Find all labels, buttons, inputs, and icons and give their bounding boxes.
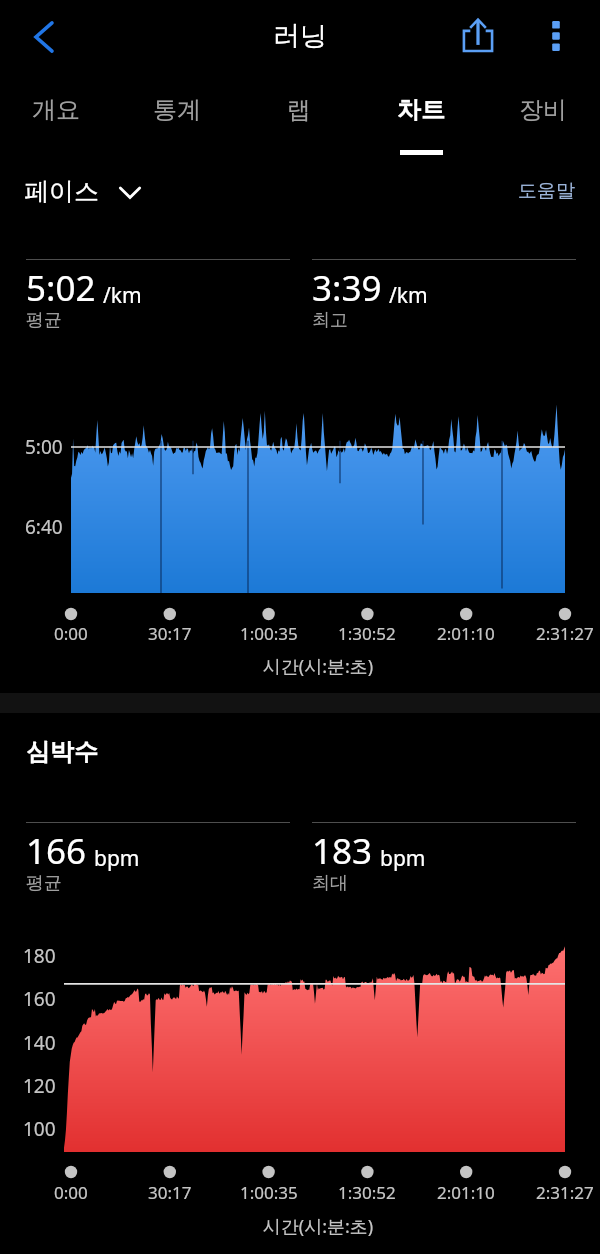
button[interactable]: 차트 — [360, 75, 482, 155]
staticText: 2:31:27 — [536, 1181, 594, 1204]
staticText: 0:00 — [54, 1181, 88, 1204]
staticText: 180 — [23, 943, 56, 969]
staticText: 1:30:52 — [338, 622, 396, 645]
button[interactable]: Share — [452, 9, 504, 61]
staticText: 심박수 — [26, 737, 98, 767]
staticText: 장비 — [519, 95, 567, 125]
staticText: 최대 — [312, 872, 348, 895]
staticText: 시간(시:분:초) — [71, 654, 565, 679]
button[interactable]: 통계 — [116, 75, 238, 155]
staticText: bpm — [94, 844, 140, 873]
staticText: 120 — [23, 1073, 56, 1099]
button[interactable]: Back — [18, 11, 70, 63]
staticText: 페이스 — [24, 176, 99, 207]
button[interactable]: 개요 — [0, 75, 117, 155]
staticText: 평균 — [26, 309, 62, 332]
staticText: 차트 — [397, 95, 445, 125]
staticText: 랩 — [287, 95, 311, 125]
staticText: 개요 — [32, 95, 80, 125]
staticText: 166 — [26, 827, 87, 875]
staticText: 1:00:35 — [240, 1181, 298, 1204]
button[interactable]: Heart rate chart — [0, 935, 600, 1152]
staticText: 2:01:10 — [437, 1181, 495, 1204]
staticText: 통계 — [153, 95, 201, 125]
button[interactable]: 랩 — [238, 75, 360, 155]
staticText: 183 — [312, 827, 373, 875]
staticText: 5:00 — [25, 434, 63, 460]
staticText: 최고 — [312, 309, 348, 332]
staticText: 6:40 — [25, 514, 63, 540]
button[interactable]: More options — [530, 10, 582, 62]
staticText: 2:31:27 — [536, 622, 594, 645]
button[interactable]: 페이스 — [24, 176, 141, 207]
staticText: 3:39 — [312, 264, 382, 312]
staticText: 시간(시:분:초) — [71, 1214, 565, 1239]
staticText: bpm — [380, 844, 426, 873]
staticText: 5:02 — [26, 264, 96, 312]
staticText: 1:30:52 — [338, 1181, 396, 1204]
staticText: 30:17 — [148, 1181, 192, 1204]
staticText: 140 — [23, 1030, 56, 1056]
staticText: /km — [389, 281, 428, 310]
staticText: 러닝 — [273, 19, 327, 53]
staticText: 100 — [23, 1116, 56, 1142]
staticText: 평균 — [26, 872, 62, 895]
staticText: 0:00 — [54, 622, 88, 645]
staticText: 160 — [23, 986, 56, 1012]
staticText: 도움말 — [518, 179, 575, 203]
staticText: 1:00:35 — [240, 622, 298, 645]
staticText: /km — [103, 281, 142, 310]
button[interactable]: 도움말 — [518, 179, 575, 203]
button[interactable]: Pace chart — [0, 380, 600, 593]
staticText: 30:17 — [148, 622, 192, 645]
staticText: 2:01:10 — [437, 622, 495, 645]
button[interactable]: 장비 — [482, 75, 600, 155]
